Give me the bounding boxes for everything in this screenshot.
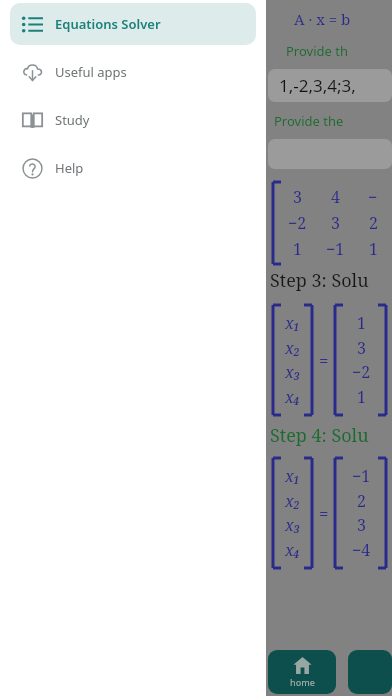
staticText: −2	[288, 212, 307, 234]
staticText: x₂	[285, 490, 301, 512]
staticText: x₁	[285, 465, 301, 487]
staticText: x₃	[285, 514, 301, 536]
staticText: Useful apps	[55, 63, 127, 81]
staticText: Step 4: Solu	[270, 423, 369, 448]
button[interactable]: home	[268, 650, 336, 694]
staticText: 3	[357, 514, 366, 536]
staticText: x₄	[285, 539, 301, 561]
staticText: −1	[352, 465, 371, 487]
staticText: Study	[55, 111, 90, 129]
staticText: x₂	[285, 337, 301, 359]
staticText: x₁	[285, 312, 301, 334]
staticText: 2	[369, 212, 378, 234]
button[interactable]: Equations Solver	[10, 3, 256, 45]
button[interactable]: Study	[10, 99, 256, 141]
staticText: Provide th	[286, 42, 348, 60]
staticText: 1	[357, 312, 366, 334]
button[interactable]: Useful apps	[10, 51, 256, 93]
staticText: −2	[352, 361, 371, 383]
staticText: −1	[326, 238, 345, 260]
staticText: 3	[357, 337, 366, 359]
staticText: A · x = b	[294, 9, 351, 29]
staticText: Step 3: Solu	[270, 268, 369, 293]
staticText: 2	[357, 490, 366, 512]
staticText: x₃	[285, 361, 301, 383]
staticText: 1	[369, 238, 378, 260]
staticText: home	[290, 676, 315, 688]
staticText: 1,-2,3,4;3,	[279, 74, 356, 97]
staticText: 1	[293, 238, 302, 260]
button[interactable]: Help	[10, 147, 256, 189]
staticText: x₄	[285, 386, 301, 408]
staticText: 4	[331, 186, 340, 208]
staticText: −	[368, 186, 378, 208]
staticText: =	[319, 502, 329, 525]
staticText: Help	[55, 159, 84, 177]
staticText: 3	[293, 186, 302, 208]
button[interactable]: Next	[348, 650, 392, 694]
staticText: =	[319, 349, 329, 372]
staticText: 3	[331, 212, 340, 234]
staticText: Provide the	[274, 112, 347, 130]
staticText: −4	[352, 539, 371, 561]
staticText: 1	[357, 386, 366, 408]
staticText: Equations Solver	[55, 15, 161, 33]
